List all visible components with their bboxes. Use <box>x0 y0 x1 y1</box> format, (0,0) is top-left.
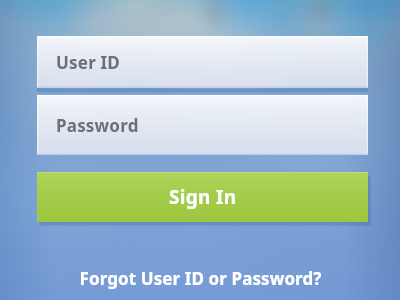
staticText: Password <box>56 114 139 137</box>
button[interactable]: Sign In <box>37 172 368 222</box>
button[interactable]: Password <box>37 95 368 155</box>
button[interactable]: User ID <box>37 36 368 88</box>
button[interactable]: Forgot User ID or Password? <box>0 256 400 300</box>
staticText: Sign In <box>169 184 237 210</box>
staticText: User ID <box>56 51 121 74</box>
staticText: Forgot User ID or Password? <box>79 267 322 290</box>
